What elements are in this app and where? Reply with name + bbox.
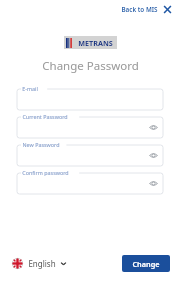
- staticText: Confirm password: [22, 169, 69, 176]
- staticText: Change Password: [42, 58, 139, 74]
- staticText: Change: [132, 259, 160, 269]
- button[interactable]: Show password: [147, 177, 160, 190]
- button[interactable]: Show password: [147, 149, 160, 162]
- staticText: Back to MIS: [121, 5, 158, 14]
- other: Close: [162, 4, 173, 15]
- staticText: E-mail: [22, 85, 38, 92]
- staticText: METRANS: [78, 38, 113, 48]
- button[interactable]: Confirm password: [17, 169, 163, 194]
- button[interactable]: New Password: [17, 141, 163, 166]
- staticText: English: [28, 258, 56, 269]
- staticText: Current Password: [22, 113, 68, 120]
- button[interactable]: Show password: [147, 121, 160, 134]
- button[interactable]: Back to MIS: [119, 2, 175, 17]
- button[interactable]: Current Password: [17, 113, 163, 138]
- staticText: New Password: [22, 141, 60, 148]
- button[interactable]: Change: [122, 255, 170, 272]
- button[interactable]: E-mail: [17, 85, 163, 110]
- button[interactable]: English: [10, 256, 69, 271]
